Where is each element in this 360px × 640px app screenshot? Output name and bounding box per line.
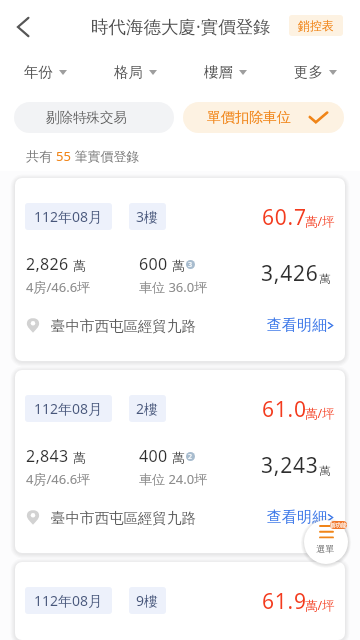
staticText: 600 [139, 253, 168, 275]
button[interactable]: 選單 [304, 520, 348, 564]
button[interactable]: 單價扣除車位 [183, 102, 344, 133]
staticText: 3,243 [261, 451, 319, 480]
staticText: 9樓 [136, 591, 159, 610]
staticText: 萬 [319, 272, 331, 286]
staticText: 選單 [316, 543, 336, 554]
staticText: 60.7 [262, 203, 307, 232]
staticText: 2樓 [136, 399, 159, 418]
staticText: 61.0 [262, 395, 307, 424]
staticText: 萬 [73, 450, 86, 466]
staticText: 查看明細 [267, 316, 327, 335]
staticText: 格局 [114, 63, 143, 81]
button[interactable]: 年份 [0, 53, 90, 91]
staticText: 112年08月 [34, 399, 103, 418]
staticText: 年份 [24, 63, 53, 81]
staticText: 萬 [73, 258, 86, 274]
staticText: 剔除特殊交易 [46, 109, 127, 126]
staticText: 新功能 [330, 522, 347, 529]
button[interactable]: 樓層 [180, 53, 270, 91]
staticText: 樓層 [204, 63, 233, 81]
staticText: 臺中市西屯區經貿九路 [51, 509, 196, 527]
button[interactable]: 格局 [90, 53, 180, 91]
button[interactable]: 查看明細 [267, 508, 334, 527]
button[interactable]: 剔除特殊交易 [14, 102, 174, 133]
staticText: 查看明細 [267, 508, 327, 527]
staticText: 共有 [26, 147, 56, 165]
staticText: 萬 [172, 450, 185, 466]
button[interactable]: 112年08月 [0, 370, 360, 553]
staticText: 臺中市西屯區經貿九路 [51, 317, 196, 335]
staticText: 4房/46.6坪 [26, 278, 91, 296]
staticText: 3,426 [261, 259, 319, 288]
staticText: 萬 [172, 258, 185, 274]
staticText: 61.9 [262, 587, 307, 616]
staticText: 4房/46.6坪 [26, 470, 91, 488]
staticText: 單價扣除車位 [207, 109, 291, 127]
staticText: 筆實價登錄 [71, 147, 140, 165]
staticText: 55 [56, 147, 71, 165]
staticText: 更多 [294, 63, 323, 81]
staticText: 112年08月 [34, 207, 103, 226]
button[interactable]: 查看明細 [267, 316, 334, 335]
staticText: 萬/坪 [305, 597, 335, 614]
staticText: 400 [139, 445, 168, 467]
staticText: 3樓 [136, 207, 159, 226]
staticText: 銷控表 [298, 18, 334, 33]
staticText: 3 [188, 260, 193, 269]
staticText: 萬 [319, 464, 331, 478]
button[interactable]: 112年08月 [0, 178, 360, 361]
staticText: 時代海德大廈·實價登錄 [91, 14, 271, 38]
button[interactable]: Back [0, 4, 46, 50]
staticText: 萬/坪 [305, 213, 335, 230]
staticText: 2 [188, 452, 193, 461]
button[interactable]: 更多 [270, 53, 360, 91]
staticText: 車位 24.0坪 [139, 470, 208, 488]
staticText: 112年08月 [34, 591, 103, 610]
staticText: 車位 36.0坪 [139, 278, 208, 296]
button[interactable]: 銷控表 [289, 15, 343, 36]
button[interactable]: 112年08月 [0, 562, 360, 640]
staticText: 2,826 [26, 253, 69, 275]
staticText: 萬/坪 [305, 405, 335, 422]
staticText: 2,843 [26, 445, 69, 467]
